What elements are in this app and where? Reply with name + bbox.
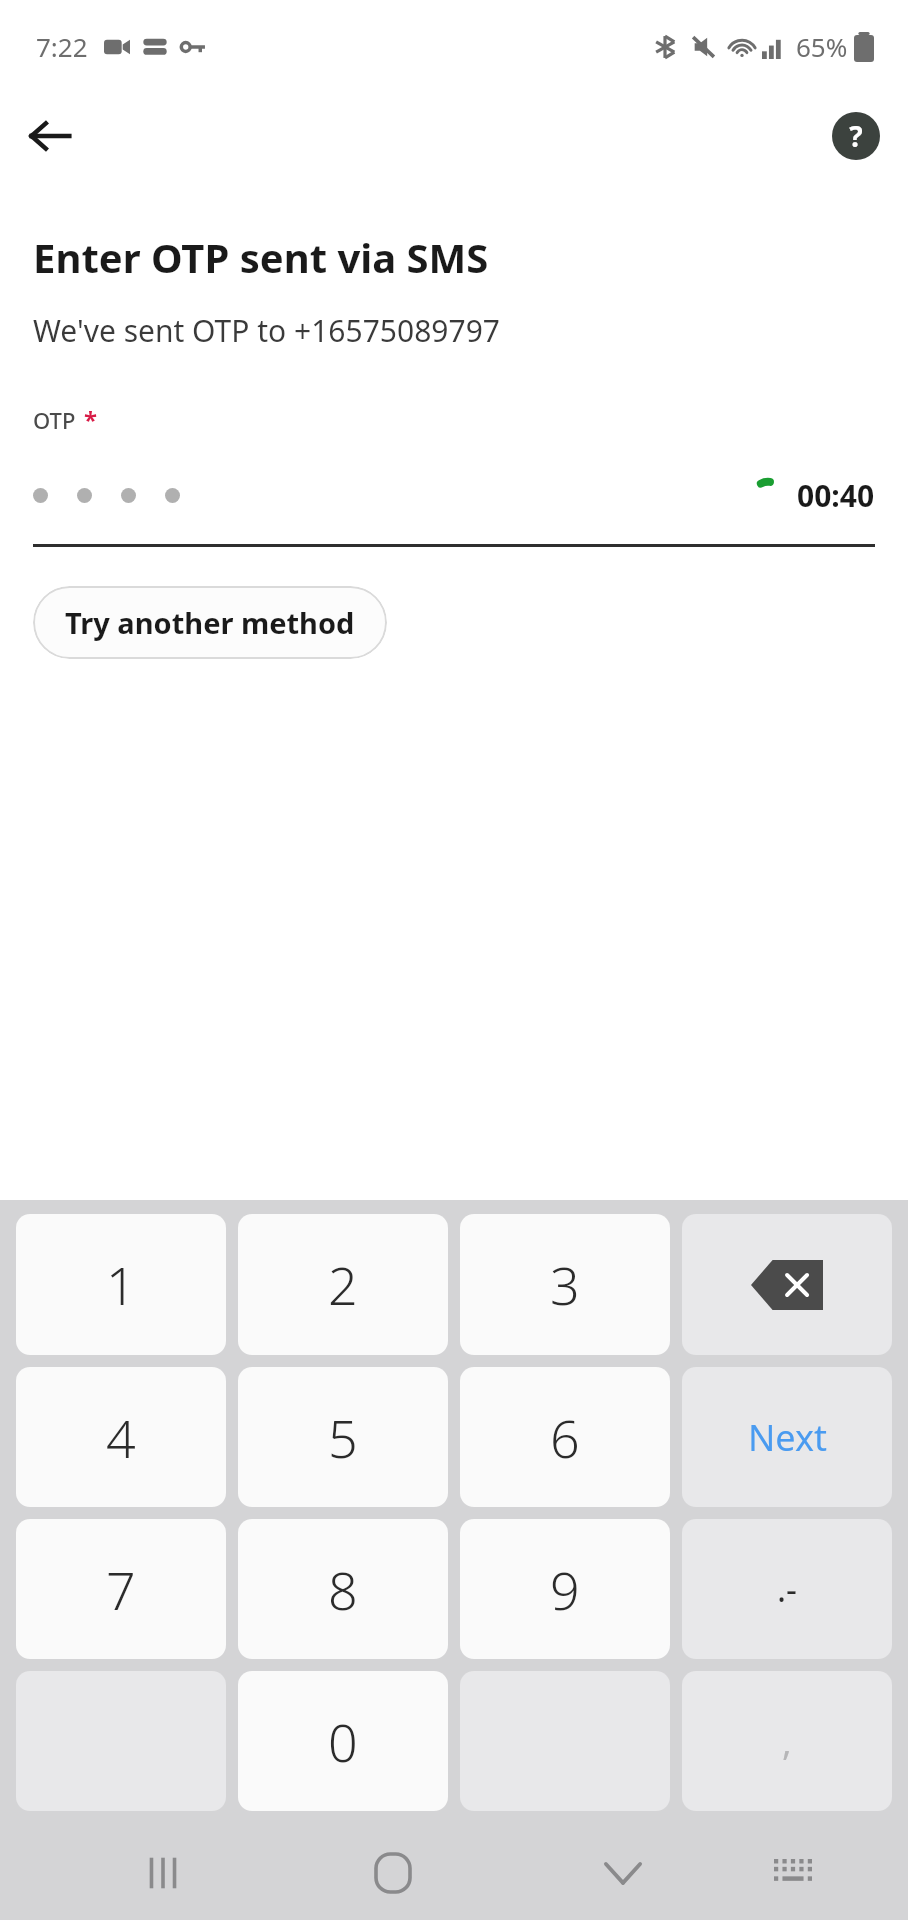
staticText: 8: [328, 1554, 358, 1625]
button[interactable]: 8: [238, 1519, 448, 1659]
button[interactable]: Change keyboard: [745, 1825, 841, 1920]
staticText: Try another method: [65, 603, 355, 642]
staticText: 0: [328, 1706, 358, 1777]
staticText: 3: [550, 1249, 580, 1320]
staticText: 9: [550, 1554, 580, 1625]
button[interactable]: 2: [238, 1214, 448, 1355]
button[interactable]: Home: [345, 1825, 441, 1920]
staticText: 1: [106, 1249, 136, 1320]
button[interactable]: 0: [238, 1671, 448, 1811]
button[interactable]: Next: [682, 1367, 892, 1507]
staticText: ,: [782, 1717, 792, 1766]
button[interactable]: Recents: [115, 1825, 211, 1920]
staticText: 7:22: [36, 29, 88, 64]
staticText: Enter OTP sent via SMS: [33, 230, 489, 284]
staticText: .-: [777, 1566, 798, 1612]
button[interactable]: 7: [16, 1519, 226, 1659]
button[interactable]: Backspace: [682, 1214, 892, 1355]
staticText: Next: [748, 1413, 827, 1462]
button[interactable]: 1: [16, 1214, 226, 1355]
button[interactable]: 9: [460, 1519, 670, 1659]
button[interactable]: Try another method: [33, 586, 387, 659]
button[interactable]: Help: [828, 108, 884, 164]
button[interactable]: 5: [238, 1367, 448, 1507]
staticText: 2: [328, 1249, 358, 1320]
staticText: OTP: [33, 405, 76, 435]
staticText: We've sent OTP to +16575089797: [33, 310, 500, 351]
staticText: 6: [550, 1402, 580, 1473]
staticText: 5: [328, 1402, 358, 1473]
staticText: 65%: [796, 29, 848, 64]
button[interactable]: 3: [460, 1214, 670, 1355]
staticText: 4: [106, 1402, 136, 1473]
staticText: ?: [849, 117, 863, 155]
button[interactable]: .-: [682, 1519, 892, 1659]
button[interactable]: Back: [14, 100, 86, 172]
staticText: 00:40: [797, 475, 875, 516]
button[interactable]: Hide keyboard: [575, 1825, 671, 1920]
staticText: 7: [106, 1554, 136, 1625]
button[interactable]: 4: [16, 1367, 226, 1507]
button[interactable]: 6: [460, 1367, 670, 1507]
staticText: *: [84, 403, 98, 436]
